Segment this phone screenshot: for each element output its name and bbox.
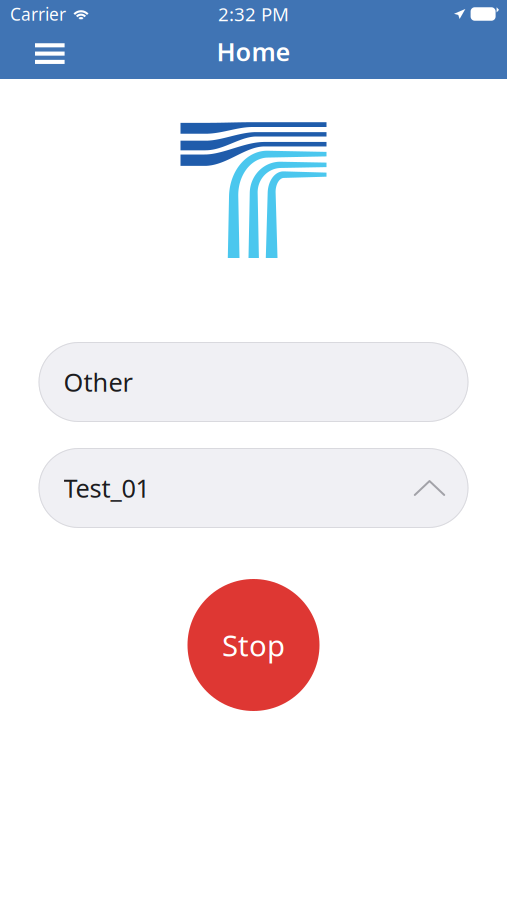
button[interactable]: Other: [38, 342, 468, 422]
button[interactable]: Stop: [187, 579, 319, 711]
button[interactable]: Menu: [0, 31, 86, 76]
staticText: Home: [216, 35, 290, 68]
staticText: Carrier: [10, 2, 66, 25]
button[interactable]: Test_01: [38, 448, 468, 528]
staticText: Stop: [222, 625, 285, 664]
staticText: Test_01: [63, 471, 149, 505]
staticText: Other: [63, 365, 132, 399]
staticText: 2:32 PM: [218, 2, 289, 26]
